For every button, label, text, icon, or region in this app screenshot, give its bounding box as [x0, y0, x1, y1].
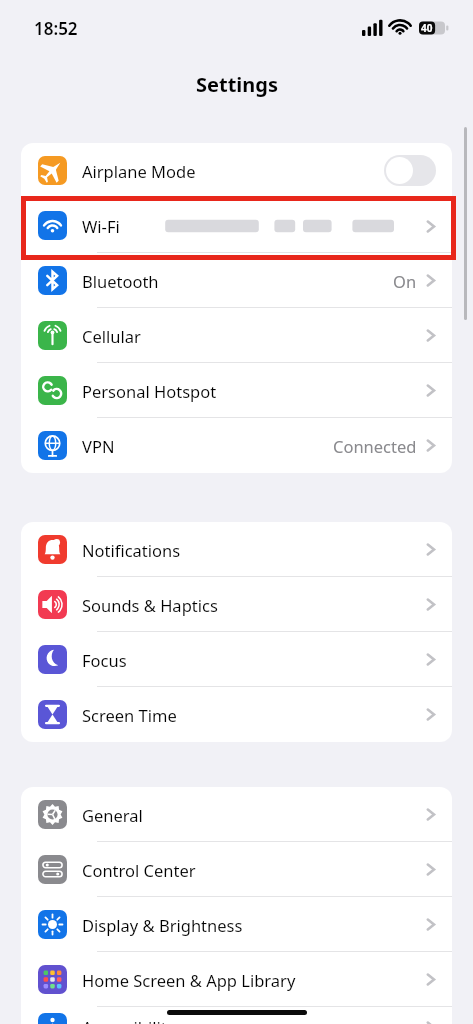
button[interactable]: Screen Time [21, 687, 452, 742]
staticText: Connected [333, 435, 417, 457]
staticText: Screen Time [82, 704, 177, 726]
staticText: VPN [82, 435, 115, 457]
staticText: Bluetooth [82, 270, 159, 292]
button[interactable]: Display & Brightness [21, 897, 452, 952]
staticText: Notifications [82, 539, 181, 561]
staticText: Accessibility [82, 1016, 176, 1024]
staticText: On [393, 270, 417, 292]
button[interactable]: Wi-Fi [21, 198, 452, 253]
staticText: Settings [196, 71, 278, 98]
button[interactable]: VPN [21, 418, 452, 473]
button[interactable]: Accessibility [21, 1007, 452, 1024]
staticText: Airplane Mode [82, 160, 196, 182]
staticText: 18:52 [34, 17, 78, 40]
button[interactable]: Airplane Mode [21, 143, 452, 198]
staticText: General [82, 804, 143, 826]
button[interactable]: General [21, 787, 452, 842]
staticText: Display & Brightness [82, 914, 243, 936]
button[interactable]: Personal Hotspot [21, 363, 452, 418]
staticText: Home Screen & App Library [82, 969, 296, 991]
button[interactable]: Airplane Mode toggle [384, 155, 436, 186]
staticText: Personal Hotspot [82, 380, 217, 402]
button[interactable]: Bluetooth [21, 253, 452, 308]
staticText: Wi-Fi [82, 215, 120, 237]
button[interactable]: Cellular [21, 308, 452, 363]
button[interactable]: Focus [21, 632, 452, 687]
staticText: Sounds & Haptics [82, 594, 218, 616]
button[interactable]: Sounds & Haptics [21, 577, 452, 632]
staticText: Cellular [82, 325, 141, 347]
staticText: 40 [421, 21, 433, 35]
button[interactable]: Home Screen & App Library [21, 952, 452, 1007]
staticText: Control Center [82, 859, 196, 881]
button[interactable]: Notifications [21, 522, 452, 577]
button[interactable]: Control Center [21, 842, 452, 897]
staticText: Focus [82, 649, 127, 671]
